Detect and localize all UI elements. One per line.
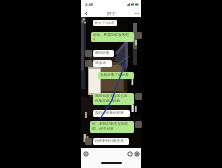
staticText: 哈哈，刚看到你发的照片 [93, 33, 132, 38]
staticText: 当然好看了超好看 [100, 73, 129, 78]
button[interactable]: 说实话 [93, 60, 112, 67]
button[interactable]: Back [82, 10, 89, 17]
staticText: 2:48 [85, 2, 93, 7]
staticText: 说实话 [95, 61, 106, 66]
button[interactable]: More [134, 151, 140, 157]
button[interactable]: 真的没有敷衍你呀 [93, 110, 130, 117]
staticText: 真的没有敷衍你呀 [95, 111, 124, 116]
button[interactable]: 好，那我们明天去拍照吧，好不好呀 [90, 121, 134, 133]
staticText: 是吗好看 [95, 51, 110, 56]
staticText: 我就知道你会这么说，你每次都这样敷 [95, 94, 132, 104]
staticText: 昨天 下午2:41 [95, 21, 115, 25]
staticText: 阿宁 [107, 11, 116, 16]
button[interactable]: 哈哈，刚看到你发的照片 [91, 32, 134, 42]
staticText: 好呀那我们明天见 [95, 139, 124, 144]
button[interactable]: 我就知道你会这么说，你每次都这样敷 [93, 93, 134, 105]
button[interactable]: More options [133, 10, 140, 17]
button[interactable]: Voice input [83, 151, 89, 157]
button[interactable]: 是吗好看 [93, 50, 114, 57]
button[interactable]: 当然好看了超好看 [98, 72, 134, 79]
staticText: 好，那我们明天去拍照吧，好不好呀 [92, 122, 132, 132]
button[interactable]: 好呀那我们明天见 [93, 138, 129, 145]
button[interactable]: Emoji [127, 151, 133, 157]
